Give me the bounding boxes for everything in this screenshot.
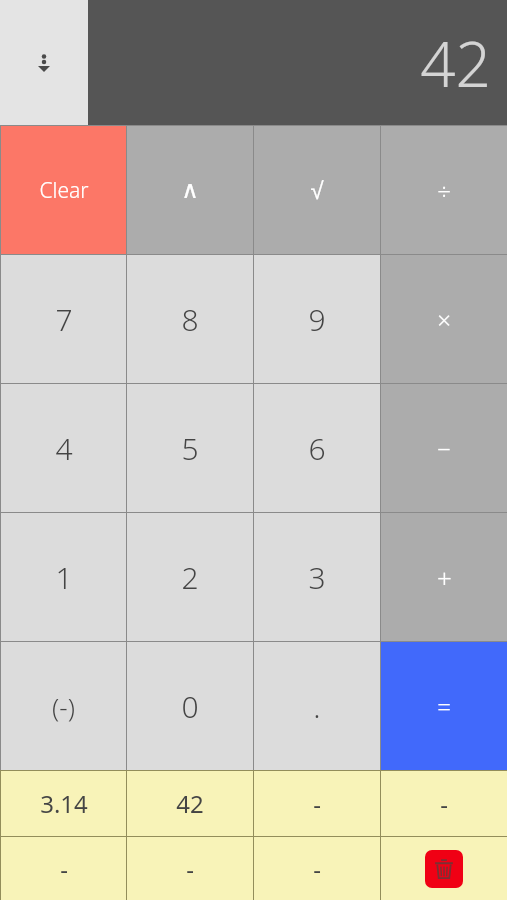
staticText: 8 <box>181 299 199 340</box>
button[interactable]: (-) <box>1 642 126 770</box>
button[interactable]: More options <box>0 0 88 125</box>
button[interactable]: - <box>254 771 380 836</box>
staticText: - <box>313 787 321 820</box>
staticText: - <box>186 852 194 885</box>
staticText: - <box>60 852 68 885</box>
button[interactable]: × <box>381 255 507 383</box>
button[interactable]: ∧ <box>127 126 253 254</box>
button[interactable]: 1 <box>1 513 126 641</box>
staticText: 9 <box>308 299 326 340</box>
staticText: √ <box>310 177 324 204</box>
button[interactable]: 8 <box>127 255 253 383</box>
button[interactable]: Clear <box>1 126 126 254</box>
staticText: = <box>437 690 451 723</box>
staticText: 1 <box>55 557 73 598</box>
staticText: . <box>313 686 321 727</box>
staticText: Clear <box>39 176 89 205</box>
button[interactable]: 0 <box>127 642 253 770</box>
staticText: - <box>313 852 321 885</box>
staticText: 0 <box>181 686 199 727</box>
button[interactable]: - <box>381 771 507 836</box>
staticText: 3 <box>308 557 326 598</box>
button[interactable]: + <box>381 513 507 641</box>
staticText: 5 <box>181 428 199 469</box>
button[interactable]: - <box>254 837 380 900</box>
button[interactable]: 42 <box>127 771 253 836</box>
staticText: (-) <box>52 689 75 724</box>
staticText: 3.14 <box>40 787 88 820</box>
staticText: + <box>437 560 452 595</box>
staticText: × <box>437 303 451 336</box>
staticText: ÷ <box>437 174 451 207</box>
staticText: − <box>437 432 451 465</box>
staticText: 4 <box>55 428 73 469</box>
button[interactable]: √ <box>254 126 380 254</box>
staticText: 2 <box>181 557 199 598</box>
staticText: 6 <box>308 428 326 469</box>
staticText: 7 <box>55 299 73 340</box>
button[interactable]: 2 <box>127 513 253 641</box>
button[interactable]: 7 <box>1 255 126 383</box>
button[interactable]: 3 <box>254 513 380 641</box>
staticText: 42 <box>420 21 491 105</box>
button[interactable]: 9 <box>254 255 380 383</box>
staticText: ∧ <box>181 176 199 204</box>
button[interactable]: 4 <box>1 384 126 512</box>
button[interactable]: 6 <box>254 384 380 512</box>
staticText: 42 <box>176 787 204 820</box>
button[interactable]: 3.14 <box>1 771 126 836</box>
button[interactable]: 5 <box>127 384 253 512</box>
button[interactable]: = <box>381 642 507 770</box>
button[interactable]: - <box>127 837 253 900</box>
button[interactable]: - <box>1 837 126 900</box>
button[interactable]: Clear memory <box>381 837 507 900</box>
staticText: - <box>440 787 448 820</box>
